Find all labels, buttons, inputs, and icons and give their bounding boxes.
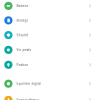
button[interactable]: Sécurité — [0, 28, 100, 42]
button[interactable]: Vie privée — [0, 42, 100, 57]
button[interactable]: Batterie — [0, 0, 100, 13]
button[interactable]: Blocage — [0, 13, 100, 28]
button[interactable]: Équilibre digital — [0, 76, 100, 91]
staticText: Vie privée — [16, 48, 31, 52]
button[interactable]: Sons et vibreur — [0, 92, 100, 100]
staticText: Blocage — [16, 18, 28, 22]
staticText: Batterie — [16, 4, 28, 8]
button[interactable]: Position — [0, 57, 100, 72]
staticText: Position — [16, 63, 28, 67]
staticText: Sons et vibreur — [16, 98, 38, 100]
staticText: Sécurité — [16, 33, 28, 37]
staticText: Équilibre digital — [16, 82, 41, 86]
